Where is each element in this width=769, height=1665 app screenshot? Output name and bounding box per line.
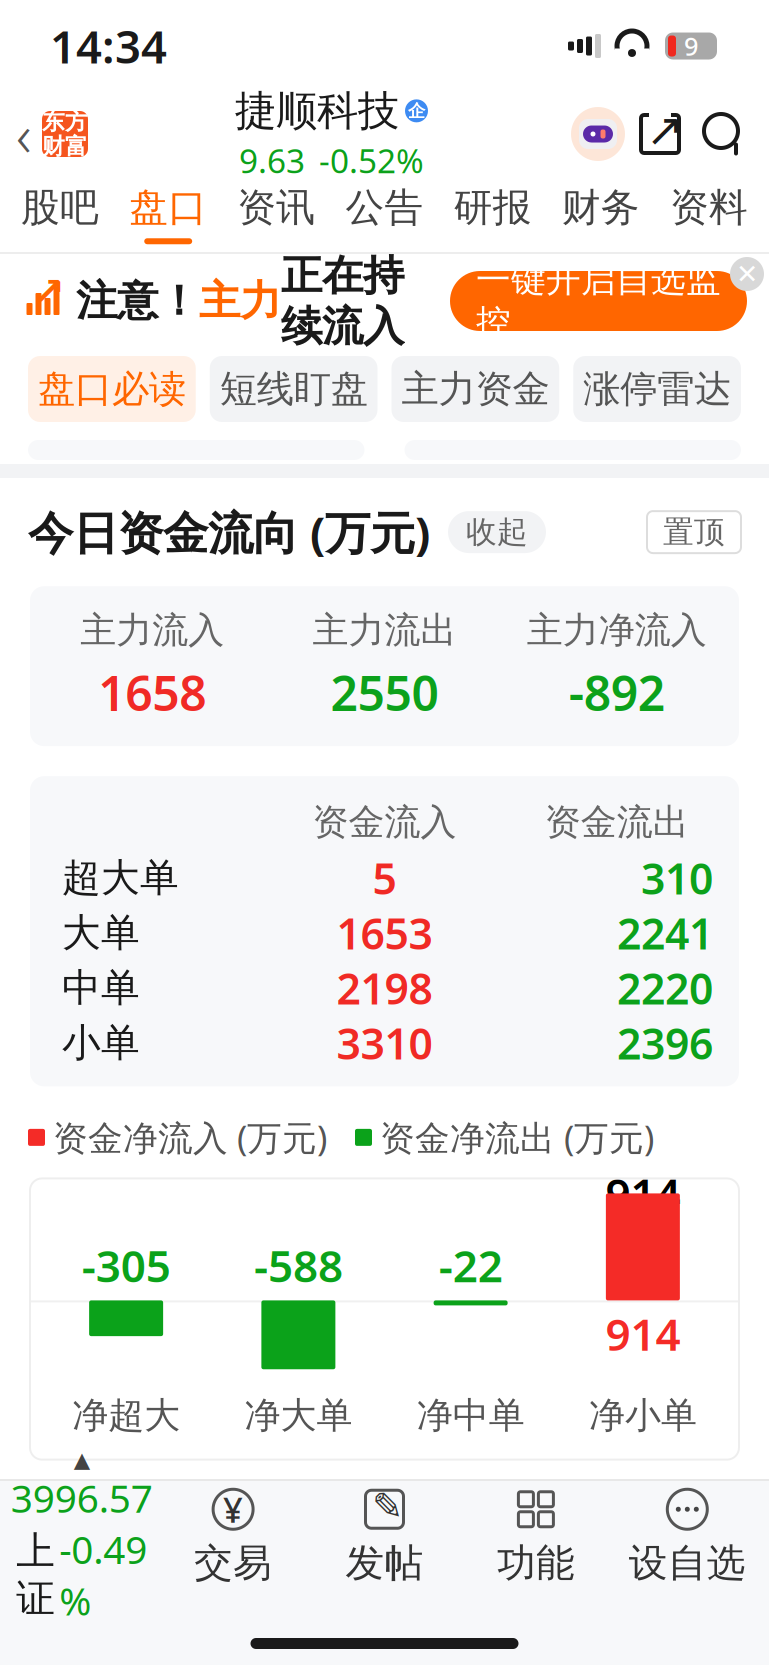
button[interactable]: 搜索 [691,92,755,176]
staticText: 研报 [454,184,532,231]
staticText: 超大单 [62,854,179,902]
staticText: 小单 [62,1019,140,1067]
staticText: 9.63 [239,138,305,183]
staticText: 资金净流出 (万元) [380,1114,654,1160]
staticText: 企 [408,100,425,121]
staticText: -892 [569,660,665,724]
staticText: ¥ [223,1486,243,1532]
staticText: ▲ [74,1448,90,1472]
staticText: 1658 [98,660,206,724]
button[interactable]: 收起 [448,511,546,553]
staticText: 净大单 [244,1393,352,1438]
staticText: 2198 [336,959,432,1016]
button[interactable]: 盘口 [114,176,222,252]
button[interactable]: 一键开启自选监控 [450,271,747,331]
button[interactable]: 资料 [655,176,763,252]
button[interactable]: ✎ [309,1481,460,1593]
staticText: 中单 [62,964,140,1012]
button[interactable]: 财务 [547,176,655,252]
staticText: 310 [641,849,713,906]
staticText: 涨停雷达 [583,366,731,412]
staticText: 设自选 [629,1539,746,1587]
staticText: 914 [605,1164,680,1223]
button[interactable]: 主力资金 [391,356,559,422]
staticText: 914 [605,1304,680,1363]
staticText: -22 [439,1236,503,1294]
staticText: ↗ [33,270,64,312]
staticText: 资料 [670,184,748,231]
staticText: 资金流出 [545,800,689,844]
staticText: 注意！ [76,276,199,326]
button[interactable]: 功能 [460,1481,612,1593]
staticText: 财富 [42,132,88,160]
staticText: 9 [684,29,698,63]
button[interactable]: 资讯 [222,176,330,252]
staticText: ↗ [646,104,684,156]
staticText: 盘口 [129,184,207,231]
staticText: 功能 [497,1539,575,1587]
staticText: 资金净流入 (万元) [53,1114,327,1160]
staticText: 一键开启自选监控 [476,258,721,344]
staticText: -305 [82,1236,171,1294]
staticText: ‹ [16,95,32,173]
staticText: ✕ [736,259,758,289]
button[interactable]: 研报 [439,176,547,252]
staticText: 主力流入 [80,608,224,652]
staticText: 净超大 [72,1393,180,1438]
staticText: 2550 [330,660,438,724]
staticText: 净中单 [417,1393,525,1438]
staticText: 上证 [16,1527,55,1622]
staticText: 主力净流入 [527,608,707,652]
staticText: 净小单 [589,1393,697,1438]
button[interactable]: 股吧 [6,176,114,252]
button[interactable]: ¥ [157,1481,309,1593]
button[interactable]: 置顶 [647,511,741,553]
staticText: 2241 [617,904,713,961]
staticText: 发帖 [345,1539,423,1587]
staticText: 收起 [466,513,528,551]
staticText: -588 [254,1236,343,1294]
staticText: 东方 [42,108,88,135]
button[interactable]: 短线盯盘 [210,356,378,422]
staticText: 主力 [199,276,281,326]
staticText: 2396 [617,1014,713,1071]
staticText: 资金流入 [312,800,456,844]
staticText: 大单 [62,909,140,957]
staticText: 短线盯盘 [220,366,368,412]
button[interactable]: ▲ [6,1481,157,1593]
staticText: 公告 [345,184,423,231]
button[interactable]: 关闭 [727,254,767,294]
staticText: 财务 [562,184,640,231]
staticText: 资讯 [237,184,315,231]
staticText: 置顶 [663,513,725,551]
button[interactable]: 公告 [330,176,438,252]
staticText: 14:34 [50,16,167,76]
staticText: 正在持续流入 [281,250,404,352]
staticText: -0.49% [59,1523,147,1626]
staticText: 3996.57 [11,1472,153,1523]
staticText: 盘口必读 [38,366,186,412]
staticText: 交易 [194,1539,272,1587]
staticText: 主力资金 [401,366,549,412]
staticText: 主力流出 [312,608,456,652]
staticText: 1653 [336,904,432,961]
button[interactable]: 分享 [629,92,691,176]
staticText: 2220 [617,959,713,1016]
staticText: -0.52% [319,138,424,183]
button[interactable]: 涨停雷达 [573,356,741,422]
button[interactable]: 盘口必读 [28,356,196,422]
button[interactable]: 返回 [0,92,96,176]
staticText: ✎ [372,1485,403,1527]
staticText: 今日资金流向 (万元) [28,502,430,562]
staticText: 捷顺科技 [235,85,399,136]
staticText: 3310 [336,1014,432,1071]
button[interactable]: 设自选 [612,1481,763,1593]
staticText: 5 [372,849,396,906]
staticText: 股吧 [21,184,99,231]
button[interactable]: AI 助手 [567,92,629,176]
